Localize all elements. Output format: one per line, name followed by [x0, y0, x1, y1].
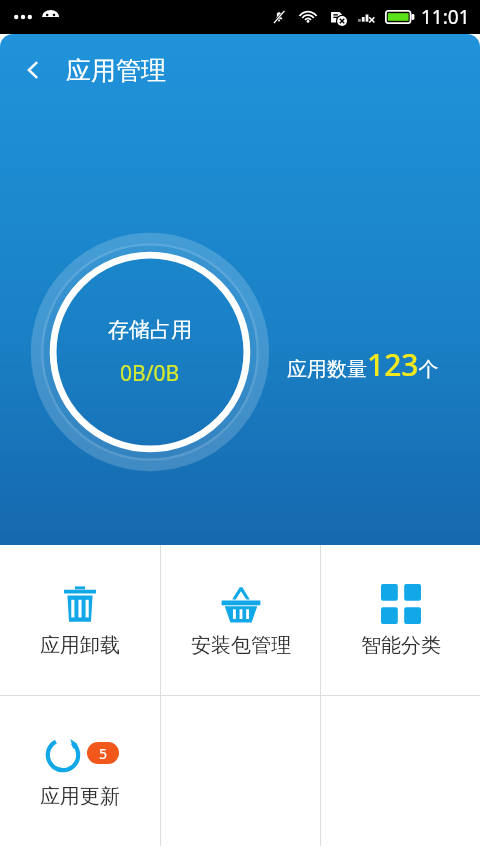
- staticText: 5: [99, 744, 108, 763]
- staticText: 0B/0B: [120, 359, 180, 388]
- button[interactable]: Back: [0, 34, 66, 106]
- staticText: 应用管理: [66, 55, 166, 86]
- button[interactable]: 安装包管理: [161, 545, 320, 695]
- staticText: 智能分类: [361, 633, 441, 658]
- button[interactable]: 5: [0, 696, 160, 846]
- button[interactable]: 应用卸载: [0, 545, 160, 695]
- staticText: 11:01: [421, 4, 470, 30]
- button[interactable]: 智能分类: [321, 545, 480, 695]
- staticText: 应用数量123个: [287, 344, 439, 385]
- staticText: 安装包管理: [191, 633, 291, 658]
- staticText: 应用卸载: [40, 633, 120, 658]
- staticText: 存储占用: [108, 317, 192, 343]
- staticText: 应用更新: [40, 784, 120, 809]
